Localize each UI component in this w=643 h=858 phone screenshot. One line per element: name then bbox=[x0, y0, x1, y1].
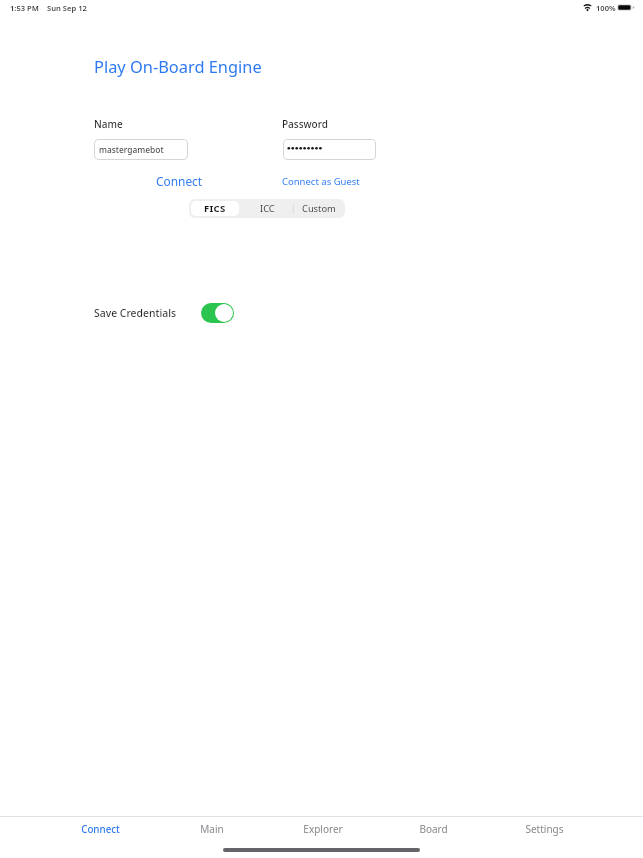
staticText: FICS bbox=[204, 202, 226, 215]
button[interactable]: Explorer bbox=[267, 819, 378, 839]
staticText: Explorer bbox=[303, 822, 343, 836]
staticText: 1:53 PM bbox=[10, 3, 39, 13]
staticText: Custom bbox=[302, 202, 336, 215]
button[interactable]: FICS bbox=[191, 201, 239, 216]
staticText: Board bbox=[419, 822, 448, 836]
button[interactable]: Connect as Guest bbox=[282, 173, 366, 189]
button[interactable]: Connect bbox=[144, 171, 214, 191]
button[interactable]: ICC bbox=[241, 199, 293, 218]
staticText: mastergamebot bbox=[99, 144, 164, 155]
staticText: 100% bbox=[596, 3, 616, 13]
button[interactable] bbox=[283, 139, 376, 160]
staticText: Save Credentials bbox=[94, 306, 177, 320]
staticText: Password bbox=[282, 117, 328, 131]
staticText: Play On-Board Engine bbox=[94, 55, 262, 77]
button[interactable]: Settings bbox=[489, 819, 600, 839]
button[interactable]: Save Credentials bbox=[201, 303, 234, 323]
button[interactable]: Board bbox=[378, 819, 489, 839]
button[interactable]: Connect bbox=[44, 819, 156, 839]
staticText: Name bbox=[94, 117, 123, 131]
staticText: Connect bbox=[156, 173, 203, 189]
button[interactable]: Main bbox=[156, 819, 267, 839]
staticText: Connect bbox=[81, 823, 120, 836]
staticText: Settings bbox=[525, 822, 564, 836]
staticText: Main bbox=[200, 822, 224, 836]
staticText: ICC bbox=[260, 202, 275, 215]
button[interactable]: mastergamebot bbox=[94, 139, 188, 160]
button[interactable]: Custom bbox=[293, 199, 345, 218]
staticText: Connect as Guest bbox=[282, 175, 360, 188]
staticText: Sun Sep 12 bbox=[47, 3, 87, 13]
